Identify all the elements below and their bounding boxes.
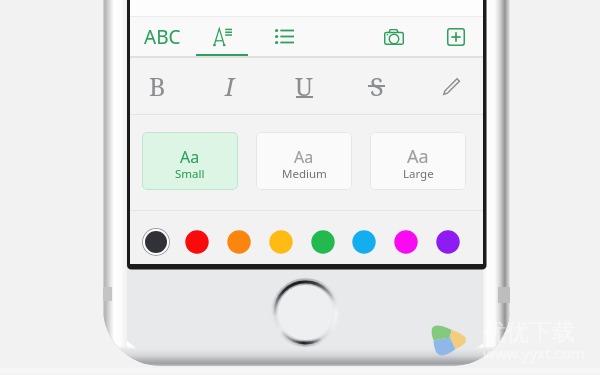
button[interactable]: S (346, 58, 406, 114)
button[interactable]: Black (140, 226, 172, 258)
button[interactable]: Bullet list (262, 17, 306, 56)
staticText: Aa (294, 146, 314, 168)
staticText: B (149, 69, 166, 103)
staticText: I (225, 69, 235, 103)
button[interactable]: Aa (370, 132, 466, 190)
button[interactable]: Purple (432, 226, 464, 258)
button[interactable]: Add (433, 17, 478, 56)
staticText: 优优下载 (483, 318, 575, 347)
staticText: www.yyxt.com (483, 343, 585, 363)
button[interactable]: Green (307, 226, 339, 258)
button[interactable]: Aa (142, 132, 238, 190)
button[interactable]: Text format (196, 17, 248, 56)
button[interactable]: Aa (256, 132, 352, 190)
staticText: Small (175, 166, 205, 182)
button[interactable]: Yellow (265, 226, 297, 258)
button[interactable]: I (200, 58, 260, 114)
button[interactable]: Draw (423, 58, 479, 114)
staticText: U (295, 69, 313, 103)
button[interactable]: Magenta (390, 226, 422, 258)
staticText: Medium (282, 166, 327, 182)
staticText: ABC (144, 24, 181, 50)
button[interactable]: ABC (138, 17, 187, 56)
button[interactable]: Orange (223, 226, 255, 258)
staticText: Aa (407, 144, 429, 169)
staticText: Large (403, 166, 434, 182)
button[interactable]: Red (181, 226, 213, 258)
staticText: S (370, 69, 384, 103)
button[interactable]: B (127, 58, 187, 114)
button[interactable]: Blue (348, 226, 380, 258)
staticText: Aa (180, 146, 200, 168)
button[interactable]: Camera (370, 17, 418, 56)
button[interactable]: U (274, 58, 334, 114)
